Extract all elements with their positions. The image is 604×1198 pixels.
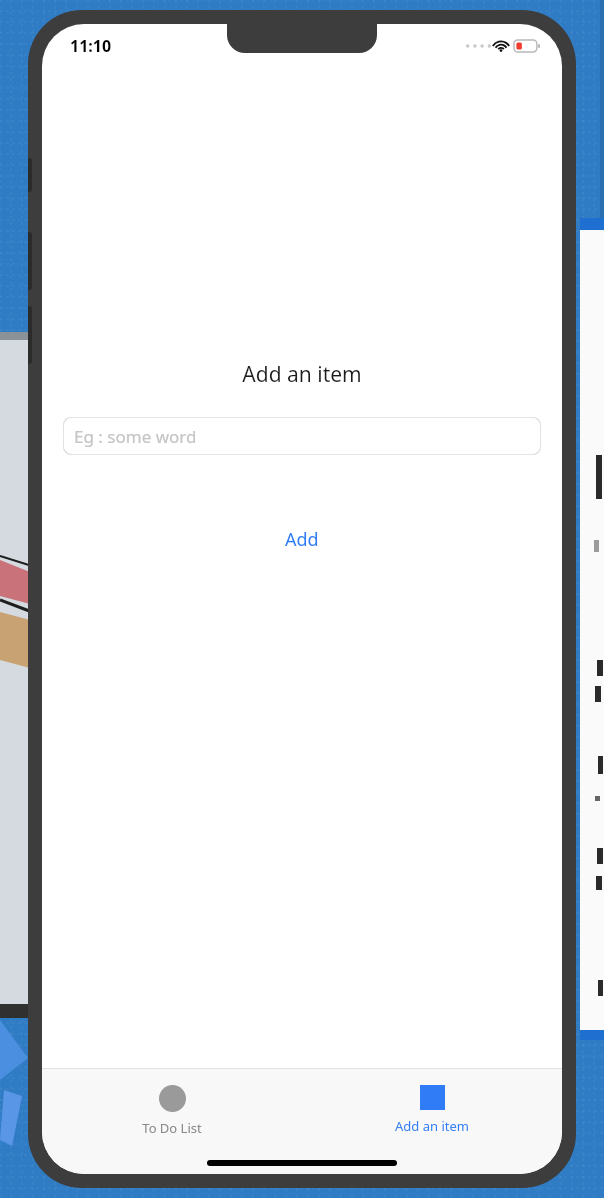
staticText: Eg : some word xyxy=(74,425,197,448)
button[interactable]: Add xyxy=(275,523,329,556)
button[interactable]: To Do List xyxy=(42,1081,302,1141)
button[interactable]: Add an item xyxy=(302,1081,562,1139)
staticText: 11:10 xyxy=(70,35,112,57)
staticText: Add an item xyxy=(395,1117,469,1135)
staticText: To Do List xyxy=(142,1119,202,1137)
staticText: Add xyxy=(285,527,319,552)
button[interactable]: Eg : some word xyxy=(63,417,541,455)
staticText: Add an item xyxy=(42,360,562,389)
